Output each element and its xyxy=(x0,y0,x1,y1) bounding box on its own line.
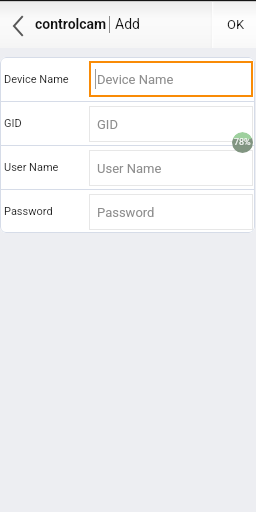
button[interactable]: Back xyxy=(0,0,34,48)
staticText: Password xyxy=(97,205,155,220)
button[interactable]: GID xyxy=(0,102,255,145)
staticText: Add xyxy=(115,16,140,32)
staticText: OK xyxy=(227,17,245,32)
staticText: Password xyxy=(4,205,53,218)
staticText: GID xyxy=(4,117,22,130)
staticText: Device Name xyxy=(97,72,174,87)
staticText: GID xyxy=(97,117,118,132)
button[interactable]: OK xyxy=(214,0,256,48)
button[interactable]: User Name xyxy=(0,146,255,189)
button[interactable]: Password xyxy=(0,190,255,233)
staticText: controlcam xyxy=(35,16,107,32)
staticText: User Name xyxy=(97,161,162,176)
staticText: Device Name xyxy=(4,73,69,86)
staticText: 78% xyxy=(234,137,251,148)
staticText: User Name xyxy=(4,161,59,174)
button[interactable]: Device Name xyxy=(0,57,255,101)
